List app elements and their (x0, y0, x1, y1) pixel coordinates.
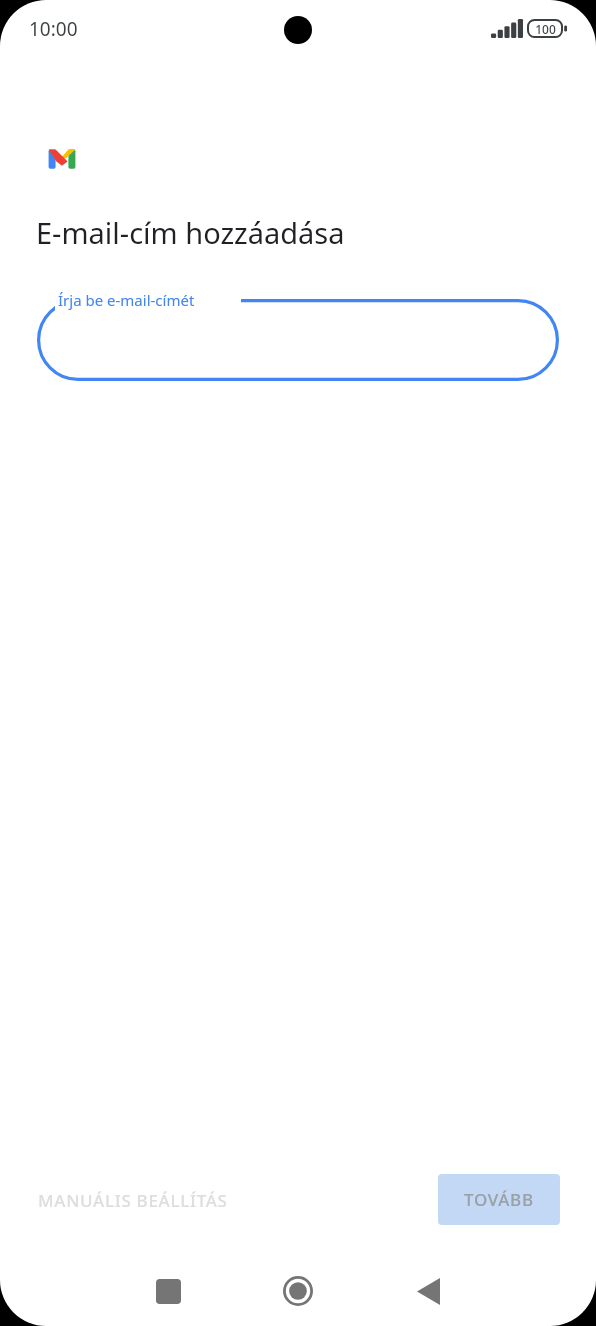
staticText: 10:00 (29, 16, 78, 42)
button[interactable]: Recent apps (138, 1261, 198, 1321)
button[interactable]: MANUÁLIS BEÁLLÍTÁS (22, 1176, 244, 1225)
staticText: 100 (529, 21, 562, 37)
button[interactable]: TOVÁBB (438, 1174, 560, 1225)
staticText: Írja be e-mail-címét (58, 290, 195, 310)
button[interactable]: Írja be e-mail-címét (37, 299, 559, 381)
staticText: E-mail-cím hozzáadása (36, 213, 345, 252)
button[interactable]: Back (398, 1261, 458, 1321)
staticText: TOVÁBB (464, 1188, 534, 1211)
staticText: MANUÁLIS BEÁLLÍTÁS (38, 1189, 228, 1212)
button[interactable]: Home (268, 1261, 328, 1321)
